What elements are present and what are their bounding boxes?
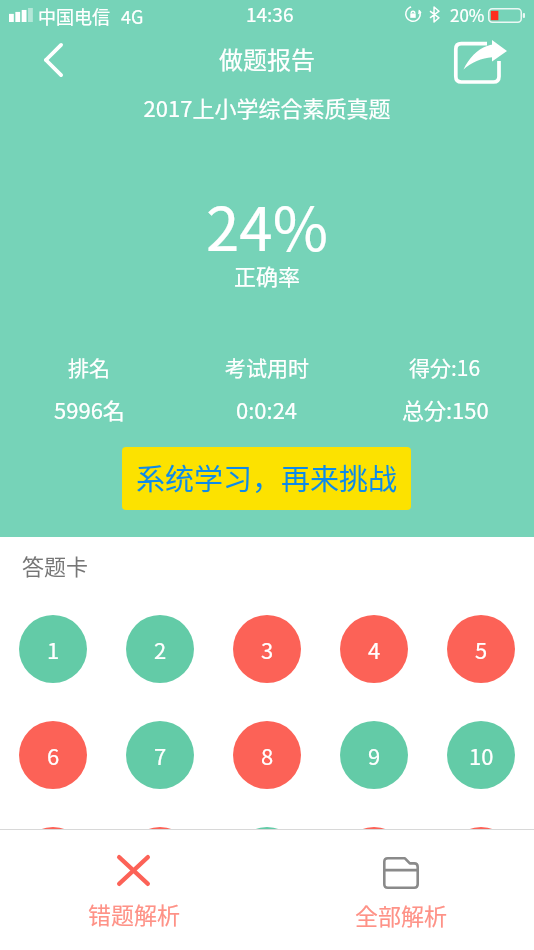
button[interactable]: 9	[340, 721, 408, 789]
staticText: 总分:150	[402, 393, 489, 425]
button[interactable]: Share	[444, 31, 516, 91]
button[interactable]: 3	[233, 615, 301, 683]
staticText: 7	[154, 739, 167, 771]
button[interactable]: 1	[19, 615, 87, 683]
button[interactable]: 5	[447, 615, 515, 683]
staticText: 10	[469, 739, 494, 771]
staticText: 4G	[121, 3, 144, 29]
button[interactable]: 2	[126, 615, 194, 683]
staticText: 14:36	[246, 0, 294, 28]
staticText: 得分:16	[409, 352, 481, 382]
staticText: 考试用时	[225, 352, 309, 382]
button[interactable]: 全部解析	[267, 829, 534, 950]
staticText: 1	[47, 633, 60, 665]
staticText: 12	[148, 845, 173, 877]
button[interactable]: 7	[126, 721, 194, 789]
staticText: 5	[475, 633, 488, 665]
staticText: 排名	[68, 352, 110, 382]
staticText: 2	[154, 633, 167, 665]
staticText: 全部解析	[355, 898, 447, 931]
staticText: 24%	[0, 181, 534, 268]
staticText: 答题卡	[22, 549, 89, 581]
button[interactable]: 12	[126, 827, 194, 895]
button[interactable]: 15	[447, 827, 515, 895]
button[interactable]: 13	[233, 827, 301, 895]
staticText: 9	[368, 739, 381, 771]
staticText: 系统学习，再来挑战	[136, 456, 398, 498]
button[interactable]: 4	[340, 615, 408, 683]
staticText: 5996名	[54, 393, 125, 425]
button[interactable]: 错题解析	[0, 829, 267, 950]
staticText: 0:0:24	[236, 393, 298, 425]
staticText: 正确率	[0, 259, 534, 291]
staticText: 3	[261, 633, 274, 665]
staticText: 做题报告	[0, 41, 534, 76]
staticText: 14	[362, 845, 387, 877]
staticText: 6	[47, 739, 60, 771]
button[interactable]: 11	[19, 827, 87, 895]
button[interactable]: 6	[19, 721, 87, 789]
staticText: 中国电信	[38, 3, 110, 29]
staticText: 4	[368, 633, 381, 665]
button[interactable]: 14	[340, 827, 408, 895]
button[interactable]: 8	[233, 721, 301, 789]
button[interactable]: 系统学习，再来挑战	[122, 447, 411, 510]
staticText: 20%	[450, 2, 485, 27]
button[interactable]: Back	[24, 36, 82, 84]
staticText: 8	[261, 739, 274, 771]
staticText: 2017上小学综合素质真题	[0, 91, 534, 123]
staticText: 错题解析	[88, 897, 180, 930]
button[interactable]: 10	[447, 721, 515, 789]
